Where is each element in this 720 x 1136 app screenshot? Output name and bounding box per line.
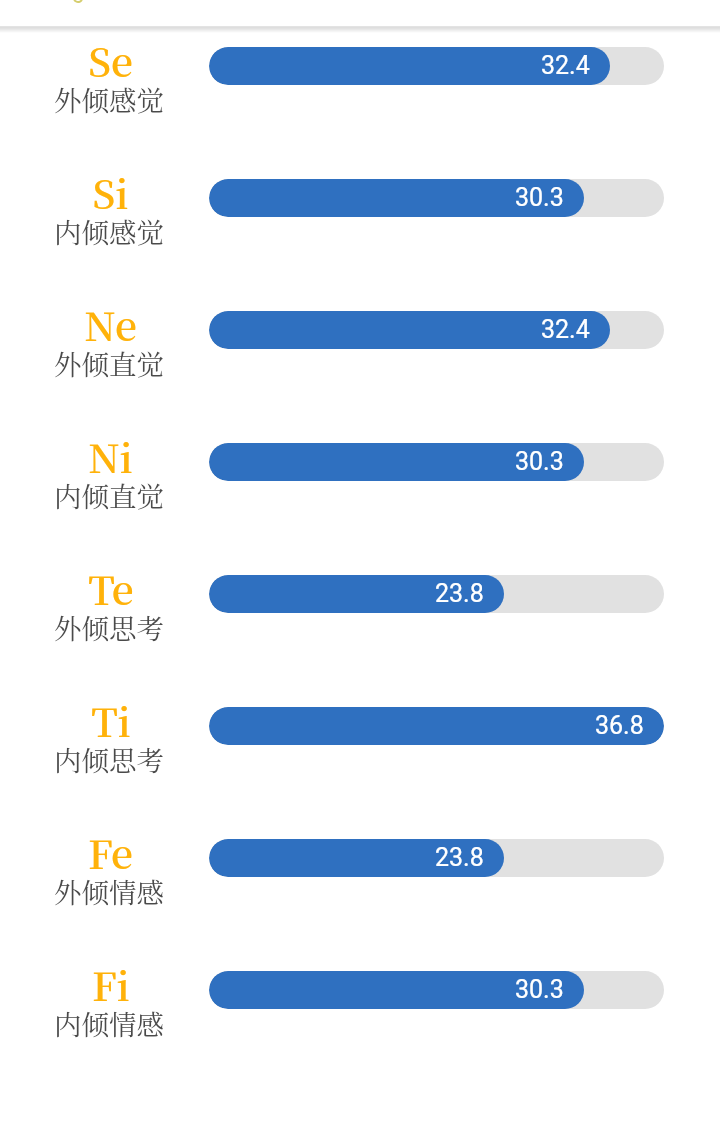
staticText: 内倾情感 — [54, 1003, 164, 1043]
staticText: Fe — [88, 824, 133, 880]
staticText: Fi — [92, 956, 130, 1012]
staticText: 32.4 — [541, 51, 590, 80]
staticText: 内倾思考 — [54, 739, 164, 779]
staticText: 外倾感觉 — [54, 79, 164, 119]
button[interactable]: Se — [0, 36, 720, 146]
staticText: 外倾直觉 — [54, 343, 164, 383]
staticText: 外倾情感 — [54, 871, 164, 911]
button[interactable]: Fi — [0, 960, 720, 1070]
staticText: 外倾思考 — [54, 607, 164, 647]
button[interactable]: Ti — [0, 696, 720, 806]
staticText: 23.8 — [435, 843, 484, 872]
staticText: 30.3 — [515, 183, 564, 212]
button[interactable]: Ni — [0, 432, 720, 542]
staticText: 23.8 — [435, 579, 484, 608]
staticText: 30.3 — [515, 975, 564, 1004]
button[interactable]: Fe — [0, 828, 720, 938]
staticText: Ni — [88, 428, 133, 484]
staticText: Te — [88, 560, 134, 616]
staticText: 内倾感觉 — [54, 211, 164, 251]
staticText: Se — [88, 32, 133, 88]
staticText: 36.8 — [595, 711, 644, 740]
button[interactable]: Te — [0, 564, 720, 674]
button[interactable]: Si — [0, 168, 720, 278]
staticText: 内倾直觉 — [54, 475, 164, 515]
staticText: 30.3 — [515, 447, 564, 476]
button[interactable]: Ne — [0, 300, 720, 410]
staticText: Ti — [91, 692, 131, 748]
staticText: Ne — [84, 296, 137, 352]
staticText: 32.4 — [541, 315, 590, 344]
staticText: Si — [92, 164, 129, 220]
